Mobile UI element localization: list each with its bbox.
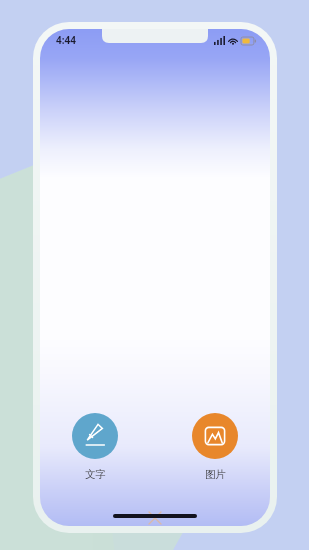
staticText: 4:44 [56,33,76,47]
button[interactable]: 文字 [62,411,128,483]
button[interactable]: 关闭 [144,507,166,526]
staticText: 图片 [205,468,226,481]
button[interactable]: 图片 [182,411,248,483]
staticText: 文字 [85,468,106,481]
